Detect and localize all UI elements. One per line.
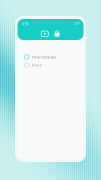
button[interactable]: About [17,61,83,69]
staticText: LTE [73,21,79,26]
staticText: 4:30 [21,21,28,26]
staticText: About [31,62,41,68]
staticText: TV Screencast [31,54,55,60]
button[interactable]: Unlock premium [54,30,60,37]
button[interactable]: TV Screencast [17,53,83,61]
button[interactable]: Screen cast [41,31,48,37]
